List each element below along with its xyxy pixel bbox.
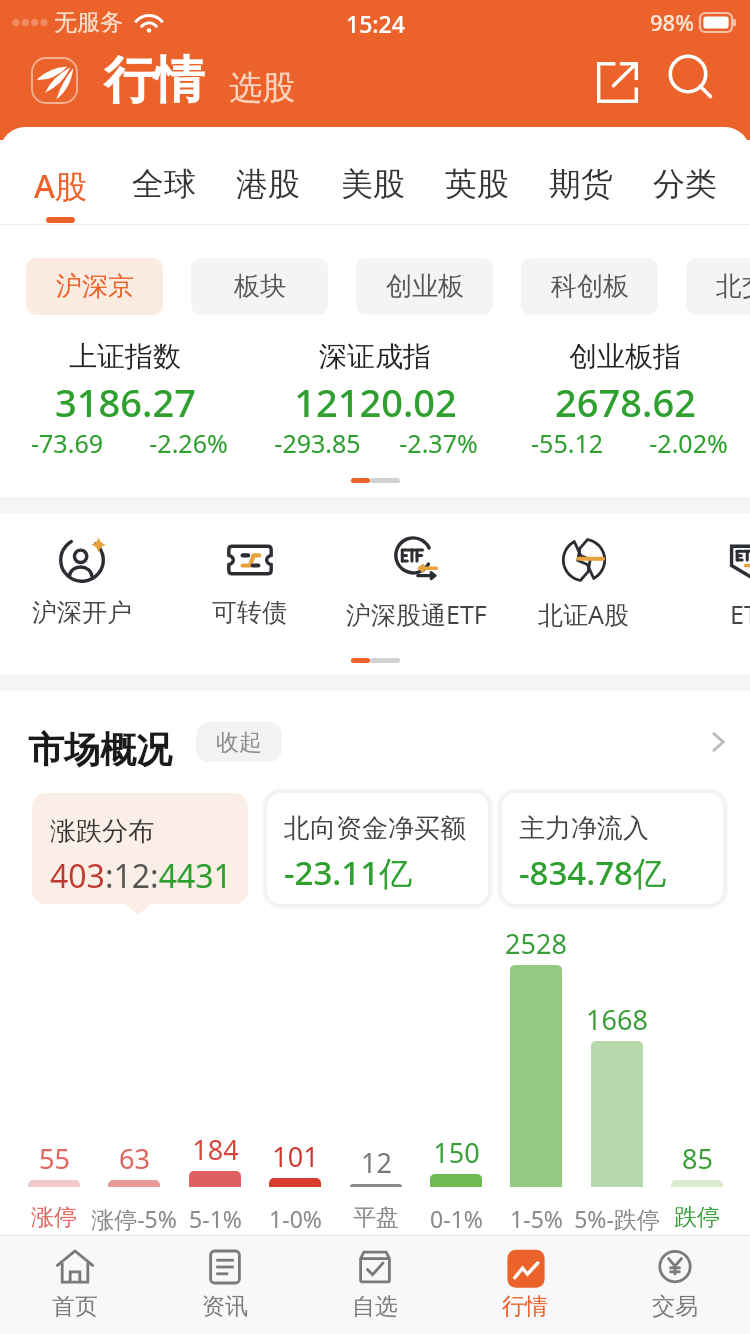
staticText: 可转债 [212, 597, 287, 628]
button[interactable]: 沪深开户 [0, 537, 165, 647]
staticText: 选股 [229, 67, 295, 109]
staticText: 深证成指 [319, 339, 431, 374]
staticText: 市场概况 [28, 727, 172, 772]
button[interactable]: 可转债 [166, 537, 332, 647]
button[interactable]: 5%-跌停 [572, 1203, 662, 1234]
staticText: -73.69 [31, 426, 103, 460]
staticText: 北证A股 [538, 597, 629, 631]
staticText: 北交所 [716, 270, 750, 303]
button[interactable]: Share [588, 53, 646, 111]
staticText: 资讯 [202, 1292, 248, 1321]
staticText: 分类 [653, 164, 717, 204]
button[interactable]: ETF [667, 537, 750, 647]
button[interactable]: 板块 [191, 258, 328, 315]
button[interactable]: More [697, 721, 739, 763]
button[interactable]: 首页 [0, 1236, 150, 1334]
staticText: -55.12 [531, 426, 603, 460]
staticText: 150 [433, 1134, 480, 1171]
button[interactable]: 美股 [321, 127, 425, 224]
button[interactable]: 北交所 [686, 258, 750, 315]
button[interactable]: 收起 [196, 722, 282, 762]
staticText: -834.78亿 [519, 850, 666, 895]
staticText: 2678.62 [555, 376, 696, 428]
button[interactable]: 上证指数 [0, 335, 250, 470]
button[interactable]: 沪深京 [26, 258, 163, 315]
button[interactable]: 北证A股 [500, 537, 666, 647]
staticText: 涨停 [31, 1203, 77, 1232]
staticText: 板块 [234, 270, 286, 303]
button[interactable]: Search [664, 50, 722, 108]
staticText: 港股 [236, 164, 300, 204]
staticText: 85 [682, 1140, 713, 1177]
button[interactable]: 资讯 [150, 1236, 300, 1334]
staticText: 15:24 [346, 8, 405, 39]
button[interactable]: 港股 [216, 127, 320, 224]
staticText: 主力净流入 [519, 812, 649, 845]
staticText: 3186.27 [55, 376, 196, 428]
staticText: 403:12:4431 [50, 854, 232, 898]
staticText: 1-5% [510, 1203, 563, 1234]
staticText: 0-1% [430, 1203, 483, 1234]
staticText: 101 [272, 1138, 319, 1175]
button[interactable]: 5-1% [170, 1203, 260, 1234]
staticText: ETF [730, 597, 750, 631]
staticText: 科创板 [551, 270, 629, 303]
staticText: 1-0% [269, 1203, 322, 1234]
button[interactable]: 创业板 [356, 258, 493, 315]
staticText: 跌停 [674, 1203, 720, 1232]
button[interactable]: 分类 [633, 127, 737, 224]
button[interactable]: 英股 [425, 127, 529, 224]
button[interactable]: 主力净流入 [502, 793, 723, 904]
staticText: 无服务 [54, 8, 123, 37]
staticText: -2.02% [649, 426, 728, 460]
staticText: 收起 [216, 728, 262, 757]
staticText: 沪深开户 [32, 597, 132, 628]
staticText: 创业板 [386, 270, 464, 303]
staticText: -2.37% [399, 426, 478, 460]
staticText: 55 [39, 1140, 70, 1177]
staticText: 沪深京 [56, 270, 134, 303]
staticText: -23.11亿 [284, 850, 413, 895]
button[interactable]: A股 [8, 127, 112, 224]
button[interactable]: 涨停 [9, 1203, 99, 1232]
staticText: 交易 [652, 1292, 698, 1321]
button[interactable]: 行情 [450, 1236, 600, 1334]
staticText: 行情 [104, 49, 204, 112]
button[interactable]: 深证成指 [250, 335, 500, 470]
staticText: 创业板指 [569, 339, 681, 374]
button[interactable]: 科创板 [521, 258, 658, 315]
button[interactable]: 交易 [600, 1236, 750, 1334]
staticText: 1668 [586, 1001, 648, 1038]
button[interactable]: 1-5% [491, 1203, 581, 1234]
button[interactable]: 涨停-5% [89, 1203, 179, 1234]
staticText: 行情 [502, 1292, 548, 1321]
staticText: 涨跌分布 [50, 815, 154, 848]
button[interactable]: 北向资金净买额 [267, 793, 488, 904]
button[interactable]: 涨跌分布 [32, 793, 248, 904]
button[interactable]: 平盘 [331, 1203, 421, 1232]
button[interactable]: 自选 [300, 1236, 450, 1334]
staticText: 上证指数 [69, 339, 181, 374]
button[interactable]: 0-1% [411, 1203, 501, 1234]
staticText: 北向资金净买额 [284, 812, 466, 845]
staticText: A股 [34, 164, 87, 208]
staticText: 184 [192, 1131, 239, 1168]
staticText: 5%-跌停 [574, 1203, 660, 1234]
button[interactable]: 跌停 [652, 1203, 742, 1232]
staticText: 首页 [52, 1292, 98, 1321]
staticText: 5-1% [189, 1203, 242, 1234]
staticText: 平盘 [353, 1203, 399, 1232]
staticText: 12120.02 [294, 376, 457, 428]
staticText: 自选 [352, 1292, 398, 1321]
button[interactable]: 1-0% [250, 1203, 340, 1234]
staticText: 2528 [505, 925, 567, 962]
button[interactable]: 全球 [112, 127, 216, 224]
button[interactable]: 创业板指 [500, 335, 750, 470]
button[interactable]: 期货 [529, 127, 633, 224]
button[interactable]: 沪深股通ETF [333, 537, 499, 647]
staticText: 12 [361, 1144, 392, 1181]
staticText: 英股 [445, 164, 509, 204]
staticText: 全球 [132, 164, 196, 204]
staticText: -293.85 [274, 426, 361, 460]
staticText: 63 [119, 1140, 150, 1177]
